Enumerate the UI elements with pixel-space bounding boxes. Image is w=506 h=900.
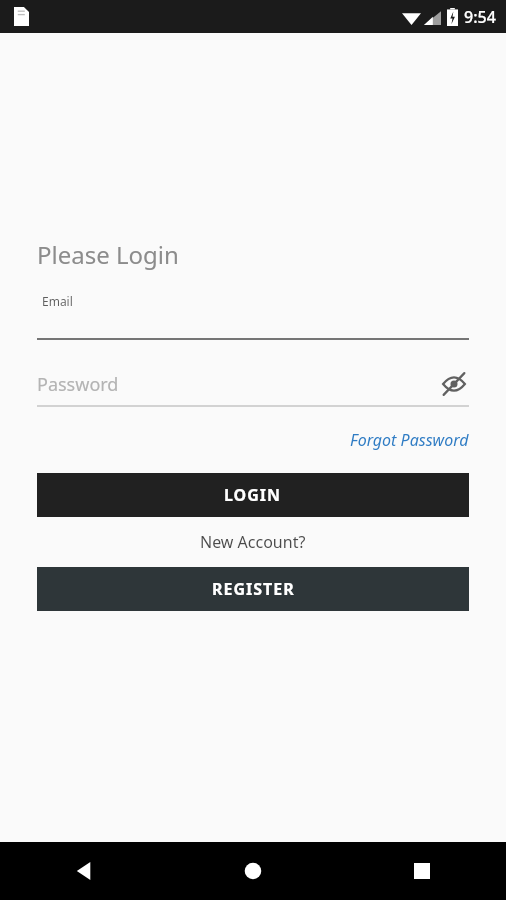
- staticText: Password: [37, 372, 439, 397]
- button[interactable]: Show password: [439, 369, 469, 399]
- staticText: LOGIN: [224, 484, 282, 506]
- staticText: Email: [42, 293, 73, 309]
- button[interactable]: Back: [0, 842, 168, 900]
- button[interactable]: New Account?: [200, 531, 306, 553]
- staticText: REGISTER: [212, 578, 295, 600]
- button[interactable]: Recent apps: [337, 842, 506, 900]
- button[interactable]: LOGIN: [37, 473, 469, 517]
- button[interactable]: Email: [37, 293, 469, 340]
- button[interactable]: Forgot Password: [350, 429, 469, 451]
- button[interactable]: Password: [37, 369, 469, 399]
- button[interactable]: Home: [168, 842, 337, 900]
- button[interactable]: REGISTER: [37, 567, 469, 611]
- staticText: Please Login: [37, 238, 179, 271]
- staticText: 9:54: [464, 6, 496, 28]
